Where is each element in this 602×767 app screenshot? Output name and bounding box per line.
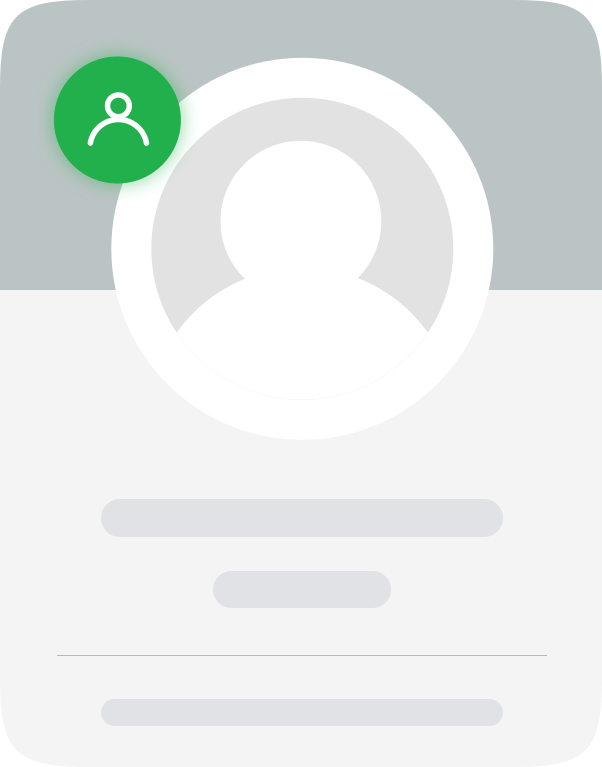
button[interactable]: Profile [54, 56, 181, 183]
